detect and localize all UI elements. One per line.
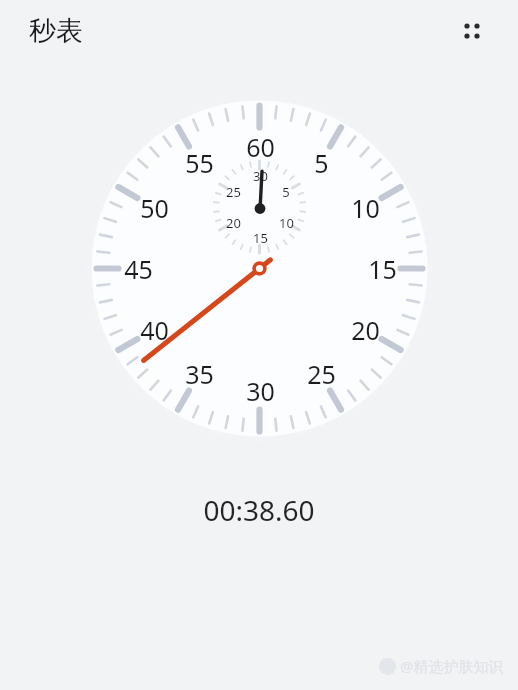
staticText: @精选护肤知识 [400, 656, 504, 676]
staticText: 5 [282, 183, 290, 201]
button[interactable]: More options [452, 11, 492, 51]
staticText: 10 [279, 214, 294, 232]
staticText: 5 [314, 146, 329, 180]
staticText: 50 [140, 191, 169, 225]
staticText: 55 [185, 146, 214, 180]
staticText: 10 [351, 191, 380, 225]
staticText: 45 [124, 252, 153, 286]
staticText: 秒表 [29, 14, 83, 48]
staticText: 30 [246, 374, 275, 408]
staticText: 25 [307, 357, 336, 391]
button[interactable]: Stopwatch dial 00:38.60 [0, 0, 518, 690]
staticText: 40 [140, 313, 169, 347]
staticText: 15 [368, 252, 397, 286]
staticText: 15 [253, 229, 268, 247]
staticText: 60 [246, 130, 275, 164]
staticText: 20 [226, 214, 241, 232]
staticText: 25 [226, 183, 241, 201]
staticText: 35 [185, 357, 214, 391]
staticText: 20 [351, 313, 380, 347]
staticText: 00:38.60 [203, 491, 315, 529]
staticText: 30 [253, 167, 268, 185]
button[interactable]: 00:38.60 [0, 487, 518, 533]
